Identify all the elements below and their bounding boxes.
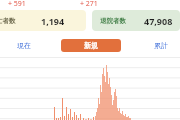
staticText: + 591 — [8, 0, 26, 9]
staticText: 47,908 — [144, 15, 173, 27]
staticText: 退院者数 — [100, 17, 126, 25]
staticText: 現在 — [17, 41, 31, 50]
staticText: 新規 — [84, 41, 98, 50]
staticText: 1,194 — [41, 15, 65, 27]
staticText: 累計 — [154, 41, 168, 50]
button[interactable]: 退院者数 — [92, 10, 180, 31]
button[interactable]: 新規 — [61, 39, 121, 52]
staticText: 亡者数 — [0, 17, 16, 25]
staticText: + 271 — [80, 0, 98, 9]
button[interactable]: 累計 — [139, 39, 180, 52]
button[interactable]: 亡者数 — [0, 10, 86, 31]
button[interactable]: 現在 — [2, 39, 46, 52]
